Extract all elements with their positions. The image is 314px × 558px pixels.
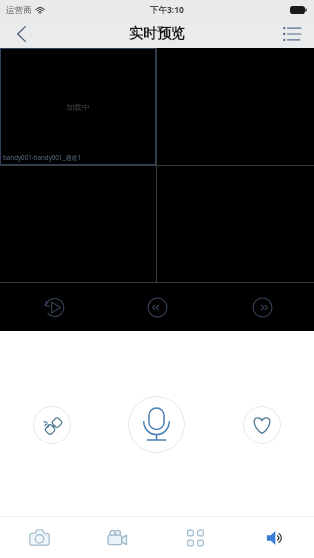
button[interactable]: Snapshot [0, 517, 78, 558]
button[interactable]: Disconnect [33, 406, 71, 444]
staticText: 实时预览 [129, 25, 185, 43]
button[interactable]: Back [0, 20, 42, 48]
button[interactable]: Next page [246, 291, 278, 323]
staticText: tiandy001-tiandy001_通道1 [3, 153, 82, 161]
staticText: 下午3:10 [150, 4, 184, 16]
button[interactable] [157, 166, 314, 283]
button[interactable]: Split layout [156, 517, 235, 558]
button[interactable]: 加载中 [0, 48, 156, 165]
button[interactable] [0, 166, 156, 283]
button[interactable]: Record [78, 517, 156, 558]
button[interactable]: Replay [36, 291, 68, 323]
staticText: 加载中 [66, 102, 90, 112]
button[interactable]: Favorite [243, 406, 281, 444]
button[interactable]: Previous page [141, 291, 173, 323]
button[interactable]: Device list [269, 20, 314, 48]
button[interactable]: Sound [235, 517, 314, 558]
button[interactable]: Talk [128, 396, 185, 453]
staticText: 运营商 [6, 5, 32, 16]
